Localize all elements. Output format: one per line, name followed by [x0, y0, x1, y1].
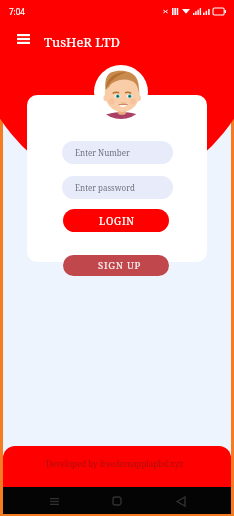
- button[interactable]: Recent apps: [41, 488, 67, 514]
- button[interactable]: Open navigation menu: [9, 29, 37, 49]
- staticText: Enter Number: [75, 147, 130, 158]
- staticText: Enter password: [75, 182, 135, 193]
- button[interactable]: LOGIN: [63, 209, 169, 232]
- button[interactable]: Enter password: [62, 176, 173, 199]
- button[interactable]: SIGN UP: [63, 255, 169, 276]
- button[interactable]: Home: [104, 488, 130, 514]
- staticText: SIGN UP: [98, 259, 141, 272]
- staticText: 7:04: [9, 6, 25, 17]
- staticText: Developed by freedomapplapbd.xyz: [46, 458, 184, 469]
- staticText: TusHeR LTD: [44, 33, 120, 51]
- button[interactable]: Enter Number: [62, 141, 173, 164]
- button[interactable]: Back: [168, 488, 194, 514]
- button[interactable]: Developed by freedomapplapbd.xyz: [3, 446, 231, 488]
- staticText: LOGIN: [99, 214, 135, 228]
